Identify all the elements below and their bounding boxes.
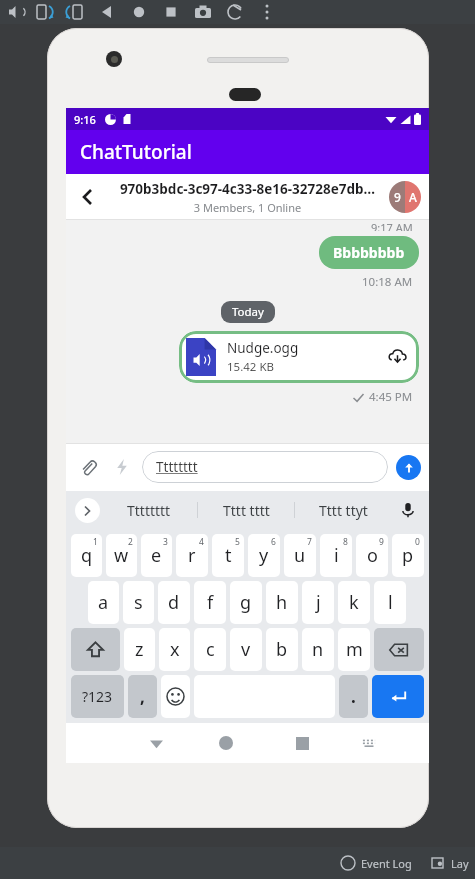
staticText: i bbox=[334, 543, 339, 568]
button[interactable]: More options bbox=[75, 498, 100, 523]
staticText: Tttt tttt bbox=[223, 501, 270, 520]
button[interactable]: g bbox=[230, 581, 262, 624]
staticText: Tttt ttyt bbox=[319, 501, 368, 520]
staticText: 6 bbox=[271, 536, 276, 548]
staticText: 9 bbox=[379, 536, 384, 548]
staticText: Lay bbox=[451, 856, 469, 871]
button[interactable]: Overview bbox=[264, 723, 340, 763]
button[interactable]: Rotate left bbox=[63, 1, 85, 23]
button[interactable]: Tttt ttyt bbox=[295, 491, 391, 529]
staticText: 4 bbox=[199, 536, 204, 548]
button[interactable]: 3 bbox=[141, 534, 172, 577]
button[interactable]: f bbox=[194, 581, 226, 624]
button[interactable]: d bbox=[158, 581, 190, 624]
button[interactable]: Send bbox=[396, 455, 421, 480]
button[interactable]: Back bbox=[66, 174, 106, 220]
button[interactable]: c bbox=[194, 628, 226, 671]
button[interactable]: m bbox=[338, 628, 370, 671]
button[interactable]: Back bbox=[96, 1, 118, 23]
staticText: k bbox=[349, 590, 359, 615]
staticText: x bbox=[170, 637, 180, 662]
staticText: 15.42 KB bbox=[227, 359, 274, 375]
staticText: w bbox=[114, 543, 129, 568]
button[interactable]: Tttttttt bbox=[142, 451, 388, 483]
button[interactable]: x bbox=[159, 628, 190, 671]
staticText: Today bbox=[232, 304, 264, 320]
button[interactable]: 1 bbox=[71, 534, 102, 577]
button[interactable]: v bbox=[230, 628, 262, 671]
button[interactable]: 0 bbox=[392, 534, 424, 577]
button[interactable]: s bbox=[123, 581, 154, 624]
button[interactable]: 9 bbox=[356, 534, 388, 577]
staticText: 9:16 bbox=[74, 112, 96, 127]
staticText: Nudge.ogg bbox=[227, 339, 299, 357]
staticText: Tttttttt bbox=[156, 458, 198, 476]
staticText: c bbox=[206, 637, 215, 662]
button[interactable]: Enter bbox=[372, 675, 424, 718]
staticText: ChatTutorial bbox=[80, 139, 192, 165]
staticText: m bbox=[346, 637, 363, 662]
button[interactable]: Hide keyboard bbox=[124, 723, 188, 763]
staticText: l bbox=[388, 590, 393, 615]
button[interactable]: k bbox=[338, 581, 370, 624]
staticText: s bbox=[134, 590, 143, 615]
button[interactable]: 4 bbox=[176, 534, 208, 577]
staticText: 7 bbox=[307, 536, 312, 548]
button[interactable]: Bbbbbbbb bbox=[319, 236, 419, 269]
button[interactable]: l bbox=[374, 581, 406, 624]
staticText: 10:18 AM bbox=[362, 274, 413, 290]
button[interactable]: 2 bbox=[106, 534, 137, 577]
staticText: p bbox=[402, 543, 414, 568]
button[interactable]: Rotate right bbox=[34, 1, 56, 23]
button[interactable]: Voice input bbox=[391, 491, 425, 529]
staticText: 2 bbox=[128, 536, 133, 548]
button[interactable]: Nudge.ogg bbox=[179, 331, 419, 383]
button[interactable]: 7 bbox=[284, 534, 316, 577]
button[interactable]: n bbox=[302, 628, 334, 671]
button[interactable]: Commands bbox=[108, 453, 136, 481]
button[interactable]: Home bbox=[188, 723, 264, 763]
staticText: y bbox=[259, 543, 269, 568]
staticText: r bbox=[188, 543, 196, 568]
staticText: 5 bbox=[235, 536, 240, 548]
button[interactable]: Emoji bbox=[161, 675, 190, 718]
staticText: Event Log bbox=[361, 856, 412, 871]
button[interactable]: a bbox=[88, 581, 119, 624]
staticText: j bbox=[316, 590, 321, 615]
staticText: Tttttttt bbox=[127, 501, 171, 520]
button[interactable]: z bbox=[124, 628, 155, 671]
button[interactable]: Volume bbox=[4, 1, 26, 23]
button[interactable]: 5 bbox=[212, 534, 244, 577]
button[interactable]: h bbox=[266, 581, 298, 624]
staticText: 9 bbox=[394, 189, 401, 205]
button[interactable]: Tttt tttt bbox=[198, 491, 294, 529]
button[interactable]: 8 bbox=[320, 534, 352, 577]
button[interactable]: Switch keyboard bbox=[340, 723, 397, 763]
staticText: e bbox=[151, 543, 162, 568]
staticText: ?123 bbox=[82, 687, 113, 706]
staticText: z bbox=[135, 637, 144, 662]
button[interactable]: Rotate bbox=[224, 1, 246, 23]
staticText: b bbox=[276, 637, 288, 662]
button[interactable]: More bbox=[257, 2, 277, 22]
button[interactable]: 6 bbox=[248, 534, 280, 577]
button[interactable]: Tttttttt bbox=[100, 491, 197, 529]
button[interactable]: ?123 bbox=[71, 675, 124, 718]
staticText: 970b3bdc-3c97-4c33-8e16-32728e7db… bbox=[108, 180, 387, 198]
staticText: 1 bbox=[93, 536, 98, 548]
button[interactable]: j bbox=[302, 581, 334, 624]
button[interactable]: b bbox=[266, 628, 298, 671]
staticText: A bbox=[409, 189, 417, 205]
button[interactable]: Download bbox=[384, 344, 410, 370]
button[interactable]: Screenshot bbox=[192, 1, 214, 23]
button[interactable]: Home bbox=[128, 1, 150, 23]
button[interactable]: . bbox=[339, 675, 368, 718]
button[interactable]: , bbox=[128, 675, 157, 718]
button[interactable]: Attach file bbox=[74, 453, 102, 481]
button[interactable]: Overview bbox=[160, 1, 182, 23]
button[interactable]: Members bbox=[389, 181, 421, 213]
staticText: . bbox=[351, 685, 356, 708]
button[interactable]: Backspace bbox=[374, 628, 424, 671]
button[interactable]: Shift bbox=[71, 628, 120, 671]
